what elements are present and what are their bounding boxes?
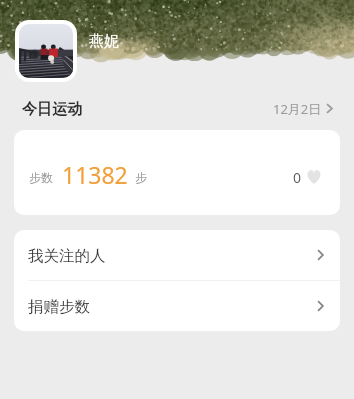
button[interactable]: 步数 xyxy=(14,130,340,215)
staticText: 我关注的人 xyxy=(28,246,106,266)
staticText: 步 xyxy=(135,170,147,185)
button[interactable]: Profile avatar xyxy=(19,24,73,78)
button[interactable]: 捐赠步数 xyxy=(14,281,340,331)
button[interactable]: 12月2日 xyxy=(273,98,333,116)
staticText: 0 xyxy=(293,168,302,187)
staticText: 燕妮 xyxy=(89,32,119,51)
button[interactable]: 我关注的人 xyxy=(14,230,340,280)
staticText: 捐赠步数 xyxy=(28,297,90,317)
staticText: 12月2日 xyxy=(273,100,322,118)
button[interactable]: Like xyxy=(293,165,322,184)
staticText: 今日运动 xyxy=(22,100,82,119)
staticText: 11382 xyxy=(62,159,128,190)
staticText: 步数 xyxy=(29,170,53,185)
